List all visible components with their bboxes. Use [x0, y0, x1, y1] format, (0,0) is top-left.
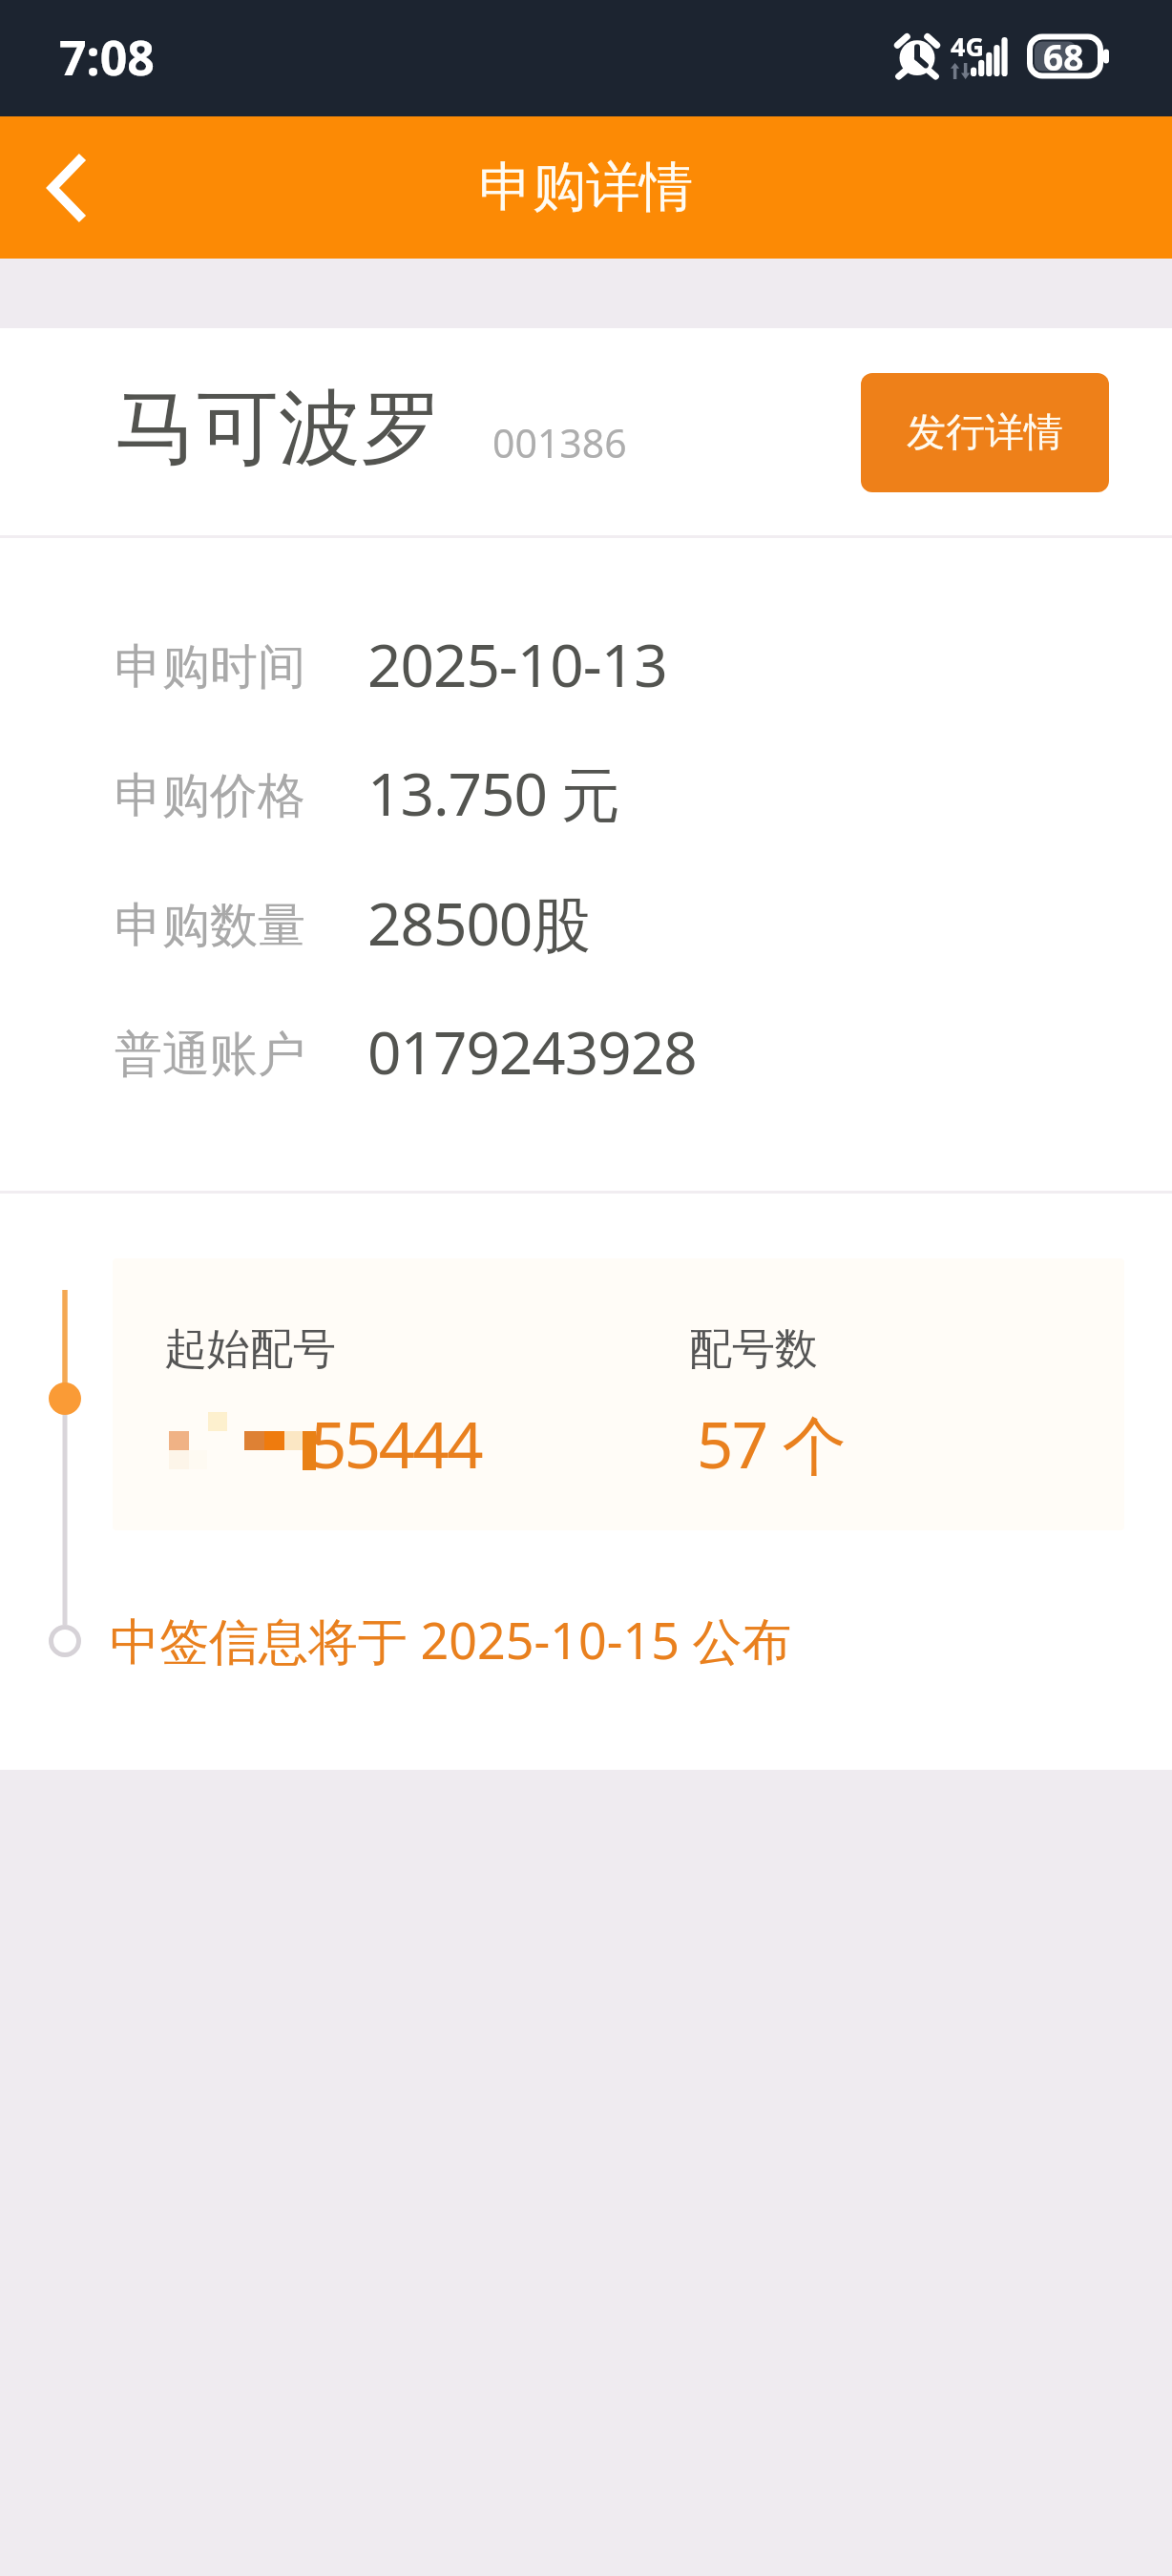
staticText: 马可波罗	[115, 377, 443, 480]
staticText: 68	[1043, 32, 1084, 80]
staticText: 4G	[951, 29, 984, 64]
staticText: 28500股	[367, 883, 591, 964]
staticText: 55444	[310, 1400, 482, 1486]
staticText: 申购时间	[115, 637, 305, 697]
staticText: 7:08	[59, 25, 155, 90]
staticText: 申购价格	[115, 766, 305, 826]
staticText: 申购数量	[115, 896, 305, 956]
staticText: 普通账户	[115, 1025, 305, 1085]
staticText: 申购详情	[479, 154, 693, 221]
staticText: 001386	[492, 416, 627, 469]
staticText: 13.750 元	[367, 753, 620, 834]
button[interactable]: Back	[19, 116, 113, 259]
staticText: 2025-10-13	[367, 624, 667, 704]
staticText: 57 个	[697, 1400, 846, 1487]
button[interactable]: 发行详情	[861, 373, 1109, 492]
staticText: 起始配号	[164, 1322, 336, 1377]
staticText: 0179243928	[367, 1011, 697, 1091]
staticText: 中签信息将于 2025-10-15 公布	[110, 1606, 792, 1673]
staticText: 发行详情	[907, 408, 1063, 458]
staticText: 配号数	[689, 1322, 818, 1377]
